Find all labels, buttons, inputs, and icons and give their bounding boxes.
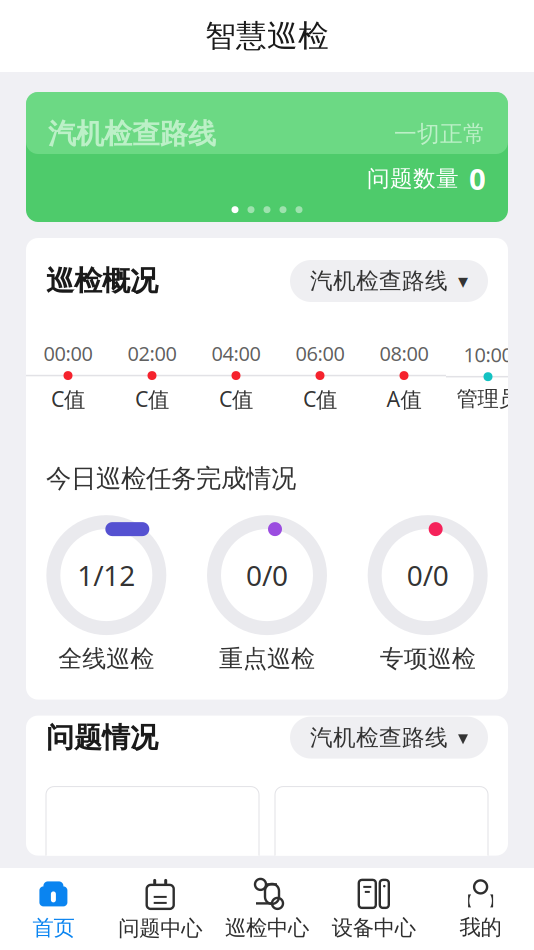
staticText: 巡检概况 bbox=[46, 264, 158, 298]
staticText: 一切正常 bbox=[394, 120, 486, 148]
staticText: 汽机检查路线 bbox=[310, 267, 448, 295]
button[interactable]: 汽机检查路线 bbox=[26, 92, 508, 222]
staticText: 问题情况 bbox=[46, 720, 158, 755]
staticText: C值 bbox=[51, 385, 85, 413]
staticText: C值 bbox=[219, 385, 253, 413]
staticText: 首页 bbox=[32, 915, 74, 941]
button[interactable]: 巡检中心 bbox=[214, 869, 320, 949]
staticText: 巡检中心 bbox=[225, 915, 309, 941]
staticText: 汽机检查路线 bbox=[48, 117, 216, 151]
button[interactable]: 问题中心 bbox=[107, 868, 214, 950]
staticText: 问题中心 bbox=[118, 915, 202, 942]
staticText: 10:00 bbox=[463, 341, 512, 368]
staticText: 04:00 bbox=[211, 340, 260, 367]
staticText: 重点巡检 bbox=[219, 644, 315, 674]
staticText: 06:00 bbox=[295, 340, 344, 367]
button[interactable]: 我的 bbox=[427, 869, 534, 949]
staticText: 设备中心 bbox=[332, 915, 416, 941]
staticText: 0 bbox=[469, 159, 486, 198]
staticText: 08:00 bbox=[379, 340, 428, 367]
staticText: 00:00 bbox=[43, 340, 92, 367]
staticText: 汽机检查路线 bbox=[310, 724, 448, 751]
staticText: ▾ bbox=[458, 726, 468, 749]
staticText: 智慧巡检 bbox=[205, 17, 329, 55]
button[interactable]: 首页 bbox=[0, 869, 107, 949]
staticText: C值 bbox=[135, 385, 169, 413]
staticText: 专项巡检 bbox=[380, 644, 476, 674]
staticText: 全线巡检 bbox=[58, 644, 154, 674]
button[interactable]: 汽机检查路线 bbox=[290, 717, 488, 759]
staticText: 问题数量 bbox=[367, 165, 459, 193]
staticText: 02:00 bbox=[127, 340, 176, 367]
button[interactable]: 设备中心 bbox=[320, 869, 427, 949]
staticText: A值 bbox=[386, 385, 421, 413]
button[interactable]: 汽机检查路线 bbox=[290, 260, 488, 302]
staticText: 1/12 bbox=[77, 556, 135, 594]
staticText: 我的 bbox=[460, 914, 502, 941]
staticText: ▾ bbox=[458, 270, 468, 292]
staticText: 0/0 bbox=[246, 556, 288, 594]
staticText: 0/0 bbox=[407, 556, 449, 594]
staticText: C值 bbox=[303, 385, 337, 413]
staticText: 今日巡检任务完成情况 bbox=[46, 463, 296, 494]
staticText: 管理员 bbox=[456, 386, 519, 412]
